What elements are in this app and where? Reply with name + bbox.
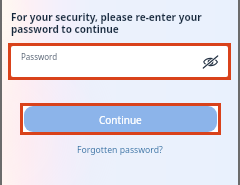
staticText: Password xyxy=(21,51,58,62)
button[interactable]: Password xyxy=(11,46,228,77)
button[interactable]: Forgotten password? xyxy=(77,144,163,156)
staticText: Continue xyxy=(99,113,142,127)
staticText: For your security, please re-enter your … xyxy=(11,10,211,36)
button[interactable]: Continue xyxy=(24,106,217,132)
button[interactable]: Hide password xyxy=(203,56,218,68)
